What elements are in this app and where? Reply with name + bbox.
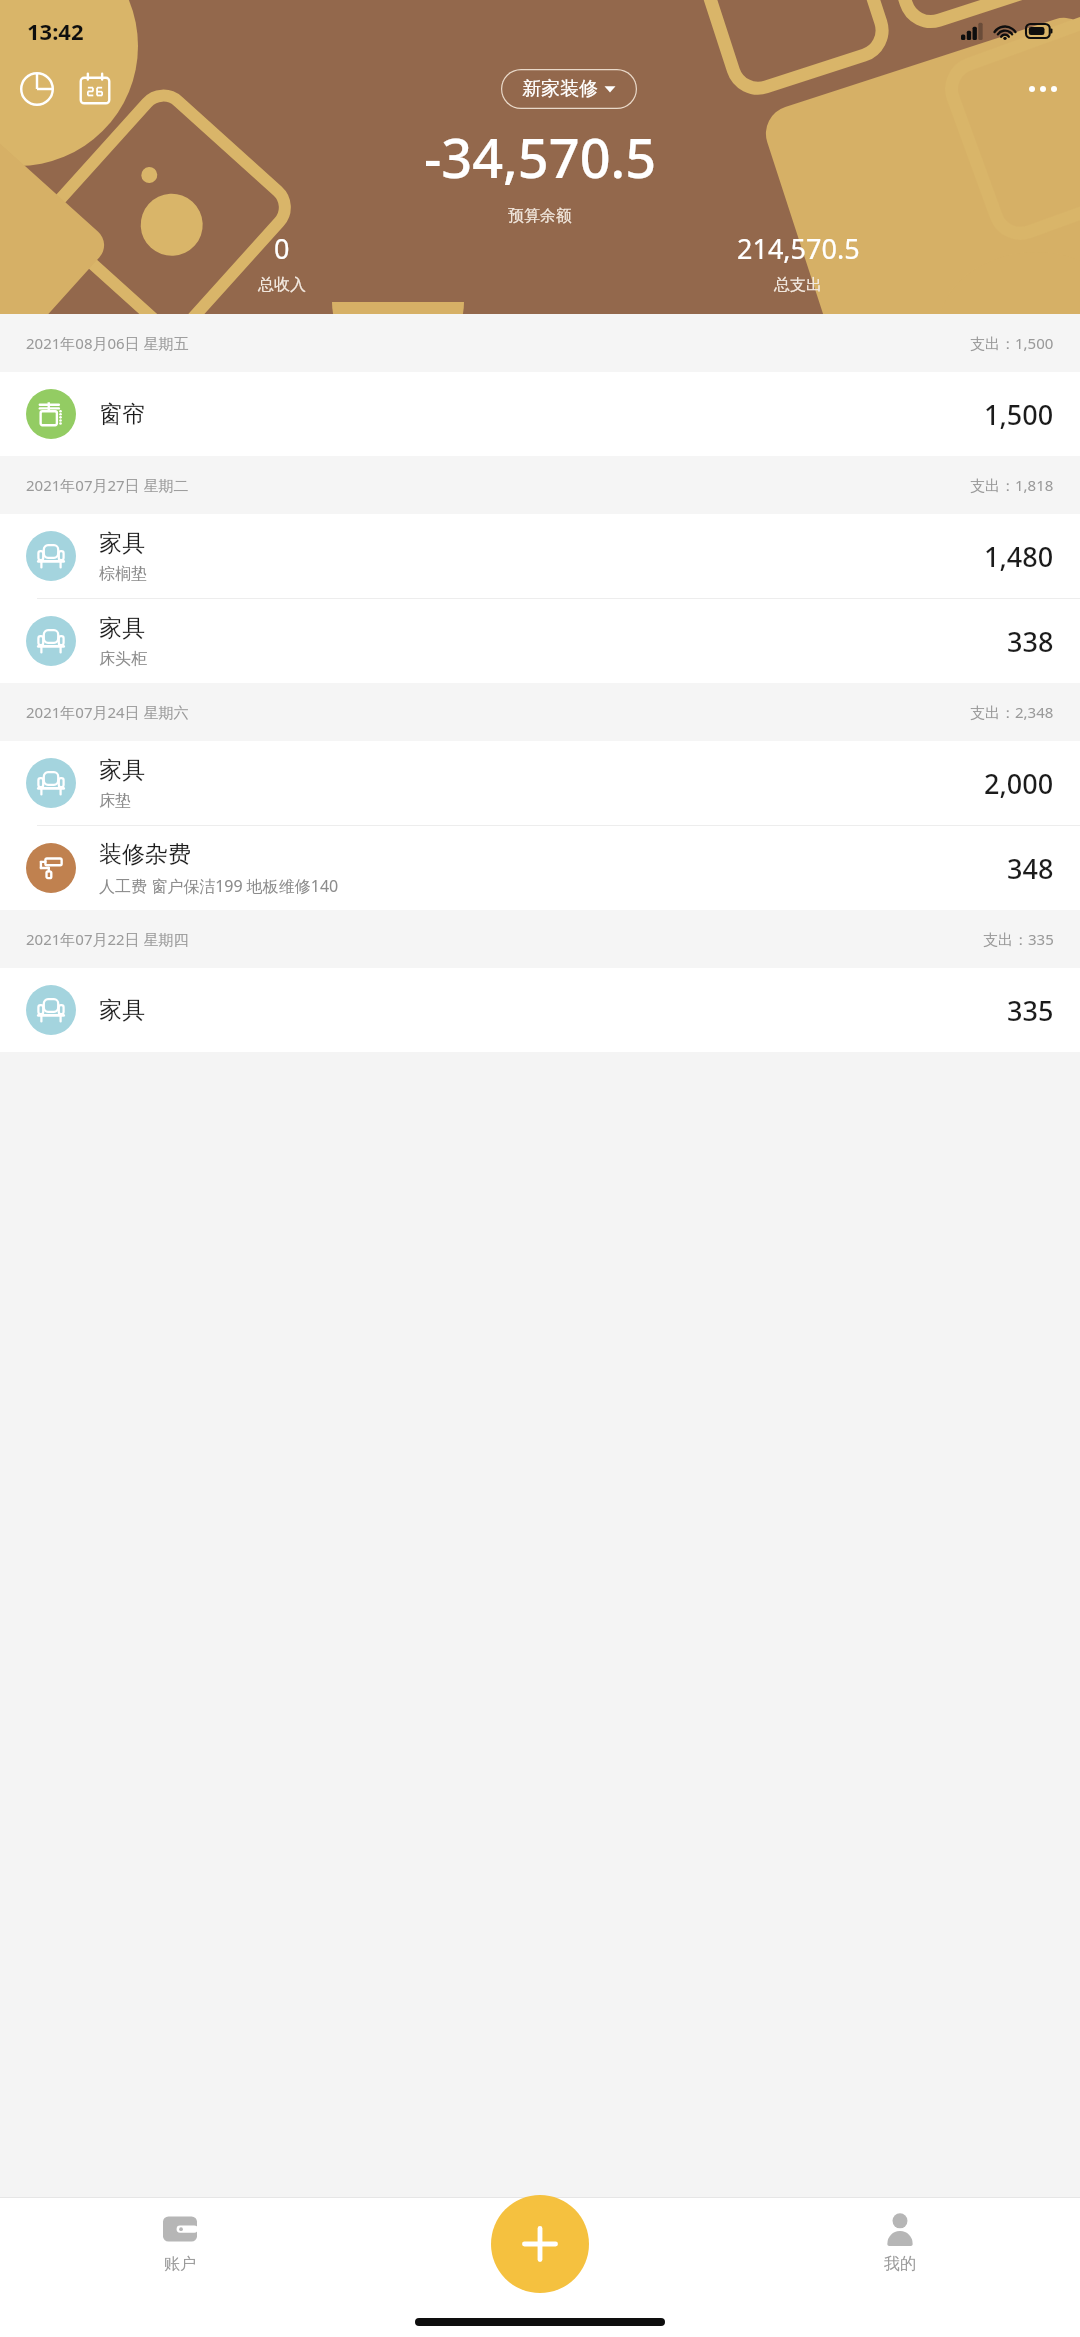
button[interactable]: 装修杂费: [0, 826, 1080, 910]
staticText: 1,480: [984, 538, 1054, 575]
button[interactable]: Calendar: [72, 66, 118, 112]
staticText: 人工费 窗户保洁199 地板维修140: [99, 875, 339, 897]
staticText: 总收入: [258, 275, 306, 295]
button[interactable]: 家具: [0, 514, 1080, 598]
staticText: 支出：335: [983, 929, 1054, 949]
staticText: 338: [1007, 623, 1054, 660]
staticText: 家具: [99, 756, 145, 785]
staticText: 装修杂费: [99, 840, 191, 869]
staticText: 2021年07月24日 星期六: [26, 702, 189, 722]
staticText: 床头柜: [99, 649, 147, 669]
staticText: 1,500: [984, 396, 1054, 433]
staticText: 214,570.5: [737, 230, 860, 267]
button[interactable]: 账户: [0, 2198, 360, 2274]
button[interactable]: 家具: [0, 741, 1080, 825]
staticText: 账户: [164, 2254, 196, 2274]
staticText: 2,000: [984, 765, 1054, 802]
button[interactable]: 家具: [0, 968, 1080, 1052]
staticText: 支出：1,500: [970, 333, 1054, 353]
button[interactable]: 家具: [0, 599, 1080, 683]
staticText: 348: [1007, 850, 1054, 887]
staticText: 预算余额: [508, 206, 572, 226]
staticText: 0: [274, 230, 290, 267]
staticText: 支出：2,348: [970, 702, 1054, 722]
button[interactable]: 新家装修: [501, 69, 637, 109]
button[interactable]: More options: [1020, 66, 1066, 112]
button[interactable]: 窗帘: [0, 372, 1080, 456]
staticText: 2021年07月22日 星期四: [26, 929, 189, 949]
staticText: 床垫: [99, 791, 131, 811]
staticText: 家具: [99, 529, 145, 558]
staticText: 总支出: [774, 275, 822, 295]
button[interactable]: 我的: [720, 2198, 1080, 2274]
staticText: 家具: [99, 614, 145, 643]
button[interactable]: Add record: [491, 2195, 589, 2293]
staticText: -34,570.5: [424, 120, 657, 194]
staticText: 2021年07月27日 星期二: [26, 475, 189, 495]
staticText: 335: [1007, 992, 1054, 1029]
staticText: 我的: [884, 2254, 916, 2274]
staticText: 家具: [99, 996, 145, 1025]
staticText: 支出：1,818: [970, 475, 1054, 495]
staticText: 窗帘: [99, 400, 145, 429]
staticText: 13:42: [27, 16, 84, 46]
staticText: 新家装修: [522, 77, 598, 101]
staticText: 棕榈垫: [99, 564, 147, 584]
button[interactable]: Statistics: [14, 66, 60, 112]
staticText: 2021年08月06日 星期五: [26, 333, 189, 353]
